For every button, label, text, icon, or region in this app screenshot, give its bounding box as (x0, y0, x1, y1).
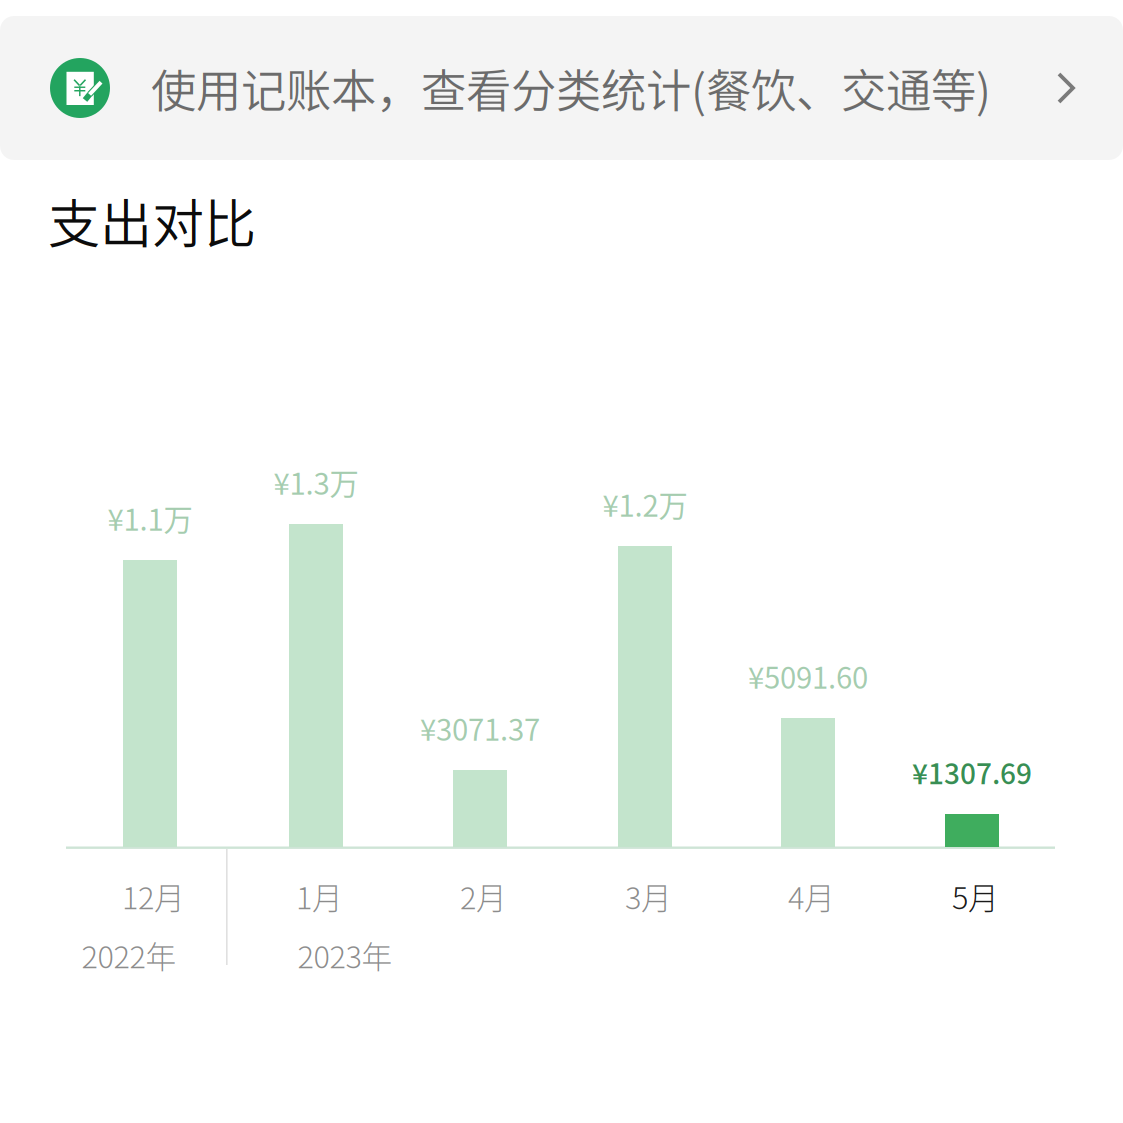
button[interactable]: ¥3071.37 (398, 440, 562, 930)
button[interactable]: 使用记账本，查看分类统计(餐饮、交通等) (0, 16, 1123, 160)
button[interactable]: ¥1.2万 (563, 440, 727, 930)
staticText: 4月 (788, 874, 835, 918)
staticText: ¥1.3万 (273, 461, 358, 503)
button[interactable]: ¥1.1万 (68, 440, 232, 930)
staticText: ¥3071.37 (420, 707, 540, 749)
staticText: 支出对比 (48, 183, 256, 258)
staticText: 12月 (122, 874, 185, 918)
staticText: ¥1.2万 (602, 483, 687, 525)
staticText: ¥1307.69 (912, 752, 1032, 792)
staticText: 5月 (952, 874, 999, 918)
staticText: 1月 (296, 874, 343, 918)
staticText: ¥5091.60 (748, 655, 868, 697)
staticText: 2023年 (297, 933, 392, 977)
button[interactable]: ¥1307.69 (890, 440, 1054, 930)
staticText: 3月 (625, 874, 672, 918)
staticText: ¥1.1万 (107, 497, 192, 539)
button[interactable]: ¥5091.60 (726, 440, 890, 930)
staticText: 使用记账本，查看分类统计(餐饮、交通等) (151, 55, 991, 121)
staticText: 2022年 (81, 933, 176, 977)
button[interactable]: ¥1.3万 (234, 440, 398, 930)
staticText: 2月 (460, 874, 507, 918)
